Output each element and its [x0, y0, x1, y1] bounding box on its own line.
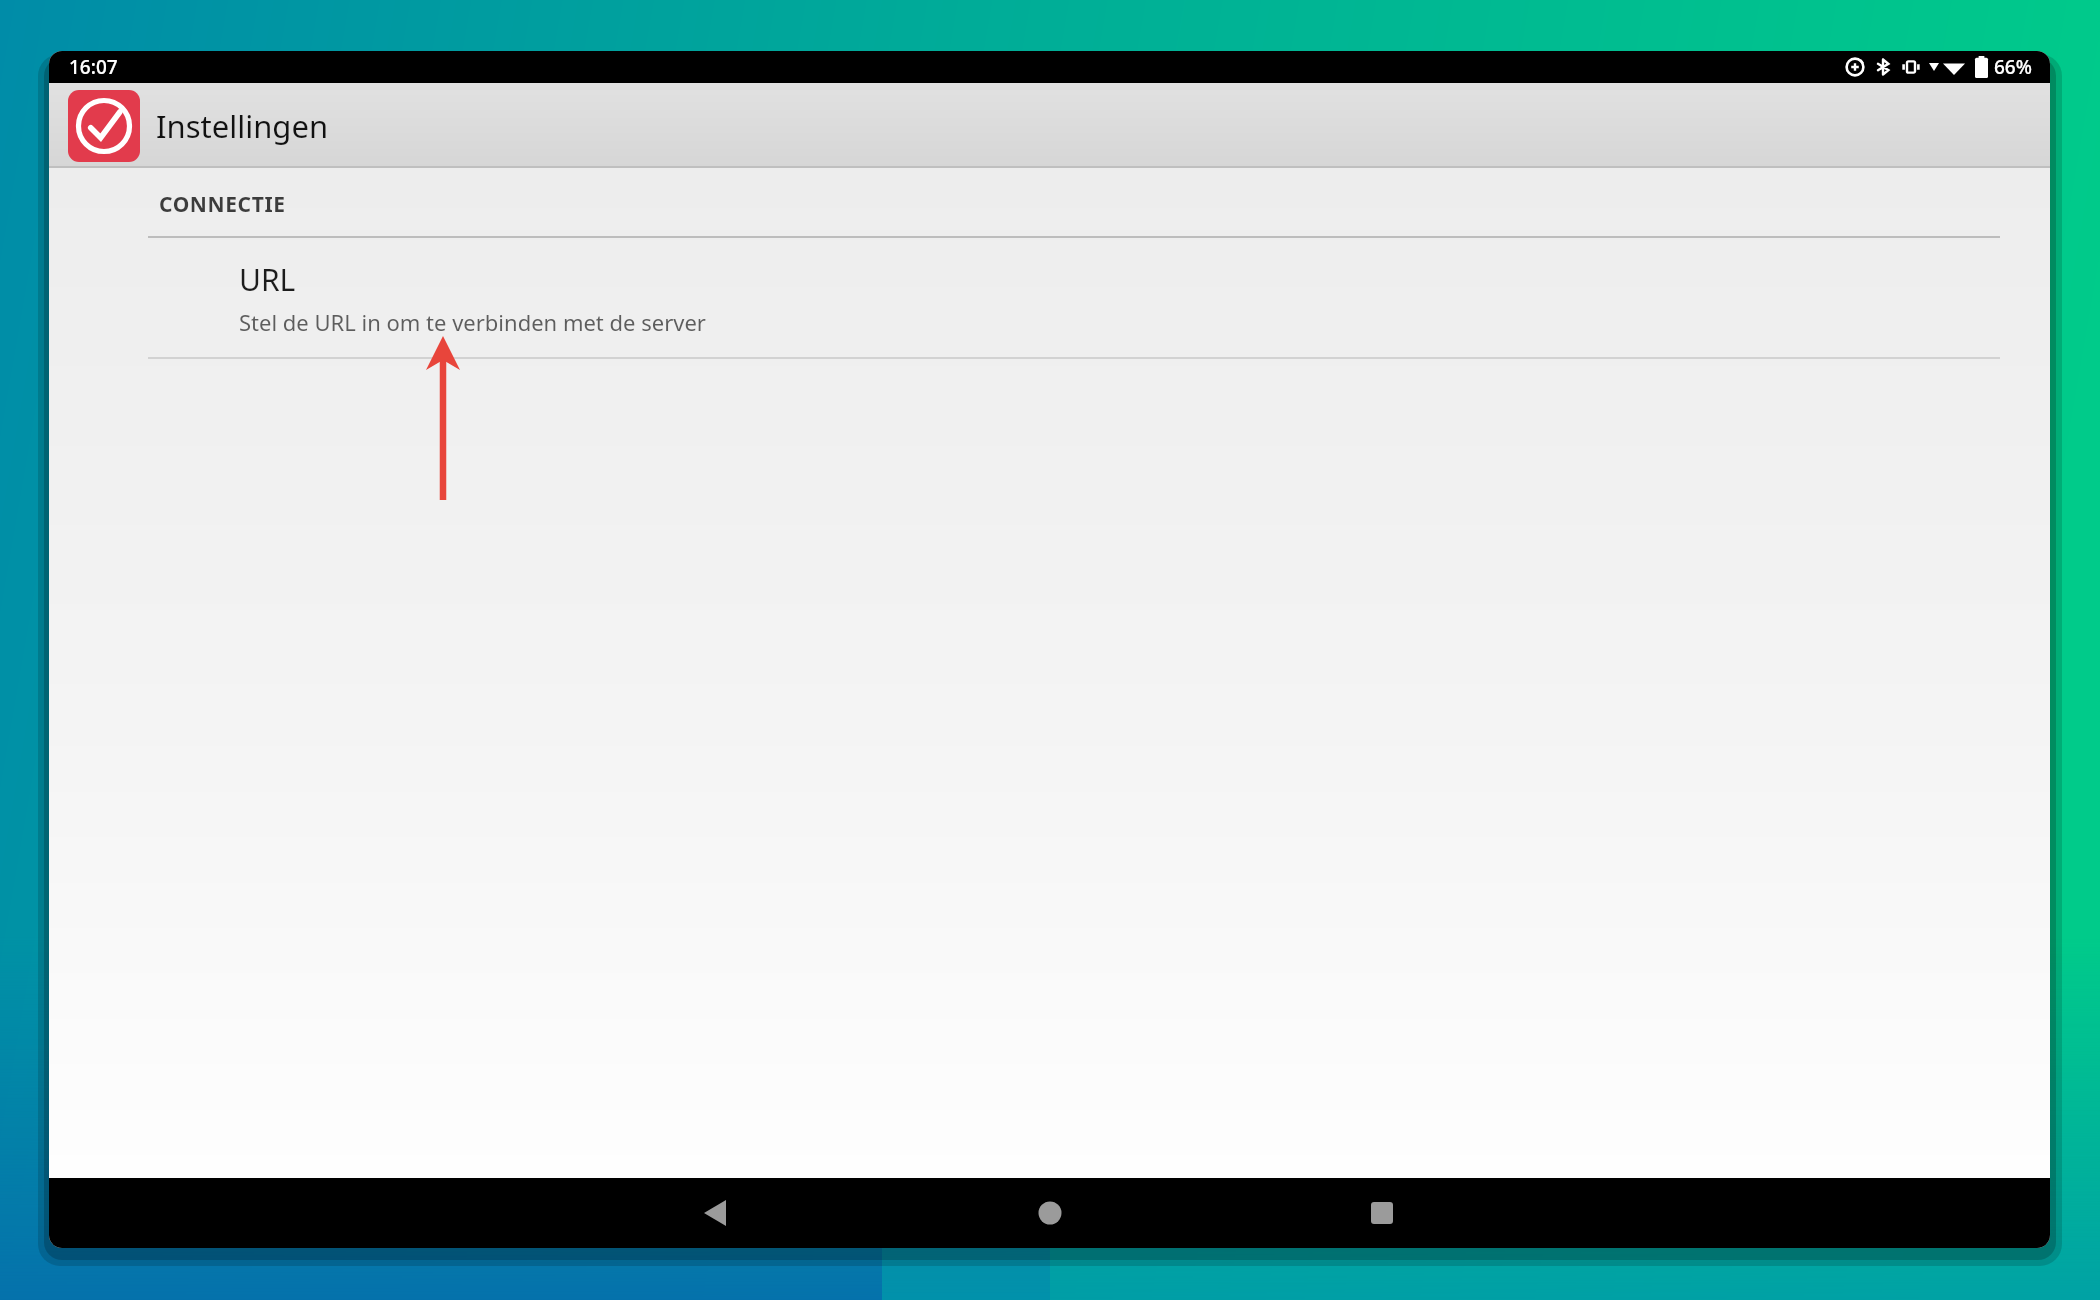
- button[interactable]: Home: [716, 1178, 1383, 1248]
- button[interactable]: URL: [49, 238, 2050, 357]
- staticText: CONNECTIE: [159, 190, 286, 219]
- staticText: Stel de URL in om te verbinden met de se…: [239, 307, 706, 337]
- staticText: 66%: [1994, 54, 2032, 80]
- staticText: 16:07: [69, 54, 118, 80]
- staticText: Instellingen: [156, 105, 329, 147]
- button[interactable]: Recents: [1383, 1178, 2050, 1248]
- button[interactable]: Back: [49, 1178, 716, 1248]
- staticText: URL: [239, 259, 296, 300]
